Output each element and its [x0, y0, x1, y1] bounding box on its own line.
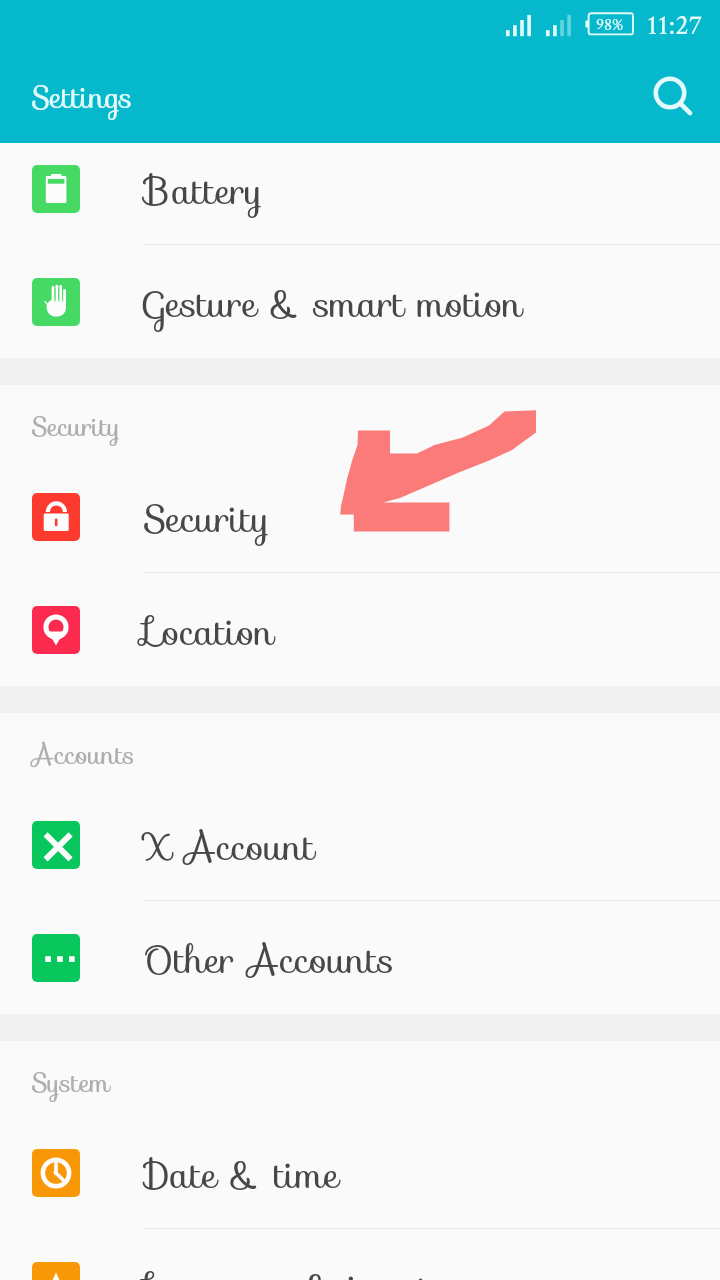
button[interactable]: X Account — [0, 788, 720, 901]
button[interactable]: Battery — [0, 143, 720, 245]
button[interactable]: Language & input — [0, 1229, 720, 1280]
button[interactable]: Search — [642, 65, 698, 121]
staticText: Settings — [32, 74, 133, 121]
staticText: Other Accounts — [144, 931, 395, 989]
button[interactable]: Gesture & smart motion — [0, 245, 720, 358]
staticText: 98% — [596, 14, 624, 36]
staticText: Date & time — [144, 1146, 340, 1204]
button[interactable]: Date & time — [0, 1116, 720, 1229]
button[interactable]: Security — [0, 460, 720, 573]
staticText: Gesture & smart motion — [144, 275, 523, 333]
button[interactable]: Location — [0, 573, 720, 686]
staticText: System — [32, 1062, 110, 1103]
staticText: 11:27 — [647, 6, 703, 44]
staticText: X Account — [144, 818, 315, 876]
button[interactable]: Other Accounts — [0, 901, 720, 1014]
staticText: Language & input — [144, 1259, 431, 1280]
staticText: Security — [144, 490, 270, 548]
staticText: Battery — [144, 162, 264, 220]
staticText: Location — [144, 603, 275, 661]
staticText: Security — [32, 406, 121, 447]
staticText: Accounts — [32, 734, 135, 775]
